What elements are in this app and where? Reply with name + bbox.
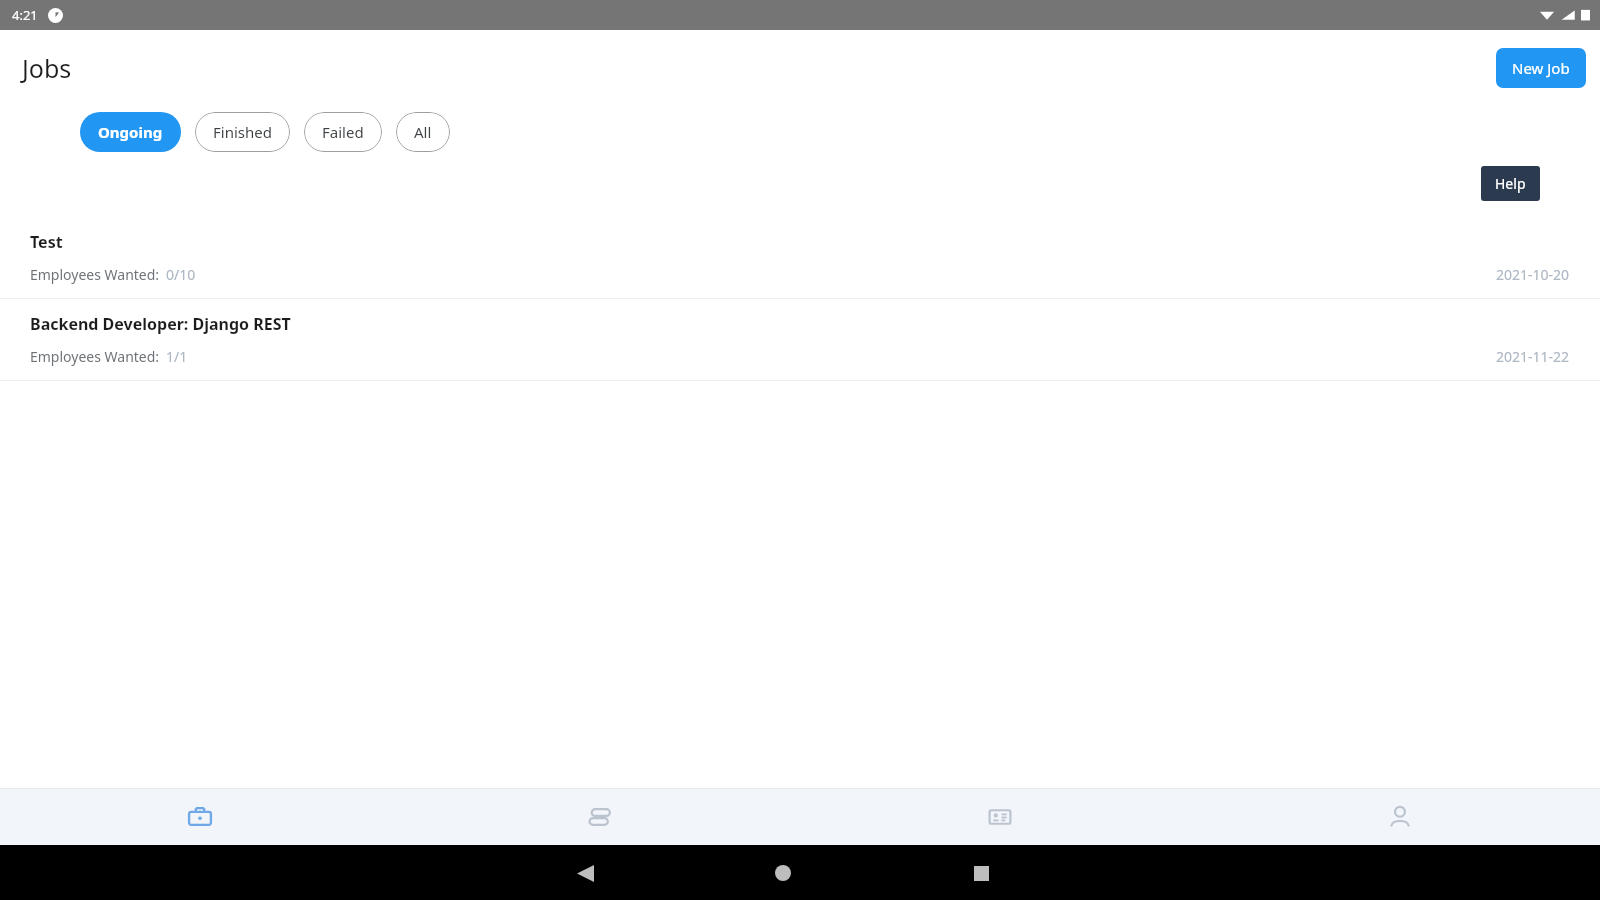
staticText: 4:21	[12, 6, 38, 24]
staticText: 1/1	[166, 347, 188, 366]
button[interactable]: Recent apps	[954, 846, 1008, 900]
staticText: Failed	[322, 122, 364, 142]
button[interactable]: Help	[1481, 166, 1540, 201]
button[interactable]: Applications	[400, 789, 800, 845]
staticText: Finished	[213, 122, 272, 142]
button[interactable]: Test	[0, 217, 1600, 298]
staticText: 2021-10-20	[1496, 265, 1570, 284]
staticText: Employees Wanted:	[30, 265, 160, 284]
staticText: Jobs	[22, 51, 72, 85]
button[interactable]: Cards	[800, 789, 1200, 845]
button[interactable]: Home	[756, 846, 810, 900]
button[interactable]: Jobs	[0, 789, 400, 845]
button[interactable]: Back	[558, 846, 612, 900]
staticText: 0/10	[166, 265, 196, 284]
button[interactable]: Profile	[1200, 789, 1600, 845]
staticText: Test	[30, 231, 63, 253]
button[interactable]: New Job	[1496, 48, 1586, 88]
button[interactable]: Failed	[304, 112, 382, 152]
button[interactable]: Backend Developer: Django REST	[0, 299, 1600, 380]
staticText: All	[414, 122, 432, 142]
button[interactable]: Ongoing	[80, 112, 181, 152]
staticText: New Job	[1512, 58, 1570, 78]
button[interactable]: Finished	[195, 112, 290, 152]
staticText: Employees Wanted:	[30, 347, 160, 366]
button[interactable]: All	[396, 112, 450, 152]
staticText: Ongoing	[98, 122, 163, 142]
staticText: 2021-11-22	[1496, 347, 1570, 366]
staticText: Help	[1495, 174, 1526, 193]
staticText: Backend Developer: Django REST	[30, 313, 291, 335]
